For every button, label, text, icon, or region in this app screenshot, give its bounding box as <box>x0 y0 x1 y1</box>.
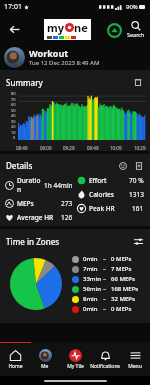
staticText: – <box>103 265 107 273</box>
button[interactable]: Calories <box>77 190 146 199</box>
button[interactable]: Workout <box>4 44 146 70</box>
staticText: Details <box>6 160 33 171</box>
staticText: 10 <box>11 130 16 135</box>
staticText: 10:29 <box>134 145 146 151</box>
staticText: 09:09 <box>40 145 52 151</box>
staticText: Tue 12 Dec 2023 8:49 AM <box>29 59 100 67</box>
button[interactable]: 8min <box>72 295 148 303</box>
staticText: 0min <box>83 305 103 313</box>
button[interactable]: 7min <box>72 265 148 273</box>
staticText: – <box>103 275 107 283</box>
staticText: Calories <box>89 190 129 199</box>
staticText: 0 MEPs <box>111 255 132 263</box>
staticText: Summary <box>6 77 43 88</box>
button[interactable]: Chart options <box>131 234 145 248</box>
button[interactable]: Home <box>0 343 30 376</box>
staticText: – <box>103 255 107 263</box>
button[interactable]: Delete workout <box>131 75 145 89</box>
staticText: Workout <box>29 47 69 59</box>
staticText: Effort <box>89 176 129 185</box>
staticText: 08:49 <box>16 145 28 151</box>
staticText: Me <box>41 363 49 370</box>
staticText: 0 MEPs <box>111 305 132 313</box>
button[interactable]: Profile status <box>105 21 123 39</box>
staticText: My Tile <box>67 363 84 370</box>
button[interactable]: Peak HR <box>77 204 146 213</box>
button[interactable]: Duration <box>5 176 75 194</box>
staticText: 09:29 <box>63 145 75 151</box>
button[interactable]: Mood <box>116 159 129 172</box>
staticText: 33min <box>83 275 103 283</box>
button[interactable]: Add note <box>132 159 145 172</box>
button[interactable]: 0min <box>72 255 148 263</box>
button[interactable]: Me <box>30 343 60 376</box>
staticText: 7 MEPs <box>111 265 132 273</box>
staticText: Notifications <box>90 363 120 370</box>
button[interactable]: Back <box>4 19 24 39</box>
staticText: – <box>103 285 107 293</box>
staticText: 20 <box>11 124 16 129</box>
staticText: 40 <box>11 113 16 118</box>
staticText: 1313 <box>129 190 144 199</box>
staticText: 126 <box>61 213 73 222</box>
staticText: Time in Zones <box>6 236 60 247</box>
staticText: 32 MEPs <box>111 295 135 303</box>
button[interactable]: My Tile <box>60 343 90 376</box>
button[interactable]: 0min <box>72 305 148 313</box>
button[interactable]: 56min <box>72 285 148 293</box>
staticText: 70 % <box>129 176 144 185</box>
staticText: 66 MEPs <box>111 275 135 283</box>
staticText: – <box>103 295 107 303</box>
staticText: 10:09 <box>110 145 122 151</box>
button[interactable]: Notifications <box>90 343 120 376</box>
button[interactable]: Search <box>125 19 147 40</box>
button[interactable]: Menu <box>120 343 150 376</box>
staticText: Menu <box>128 363 142 370</box>
staticText: 0 <box>13 135 16 140</box>
staticText: Peak HR <box>89 204 132 213</box>
staticText: 80 <box>11 91 16 96</box>
staticText: 90% <box>126 3 138 11</box>
staticText: Search <box>127 31 145 38</box>
staticText: ne <box>74 20 88 35</box>
staticText: 17:01 <box>4 2 22 12</box>
staticText: 50 <box>11 108 16 113</box>
staticText: 8min <box>83 295 103 303</box>
staticText: 70 <box>11 97 16 102</box>
button[interactable]: Average HR <box>5 213 75 222</box>
staticText: 30 <box>11 119 16 124</box>
staticText: 1h 44min <box>44 181 73 190</box>
staticText: MEPs <box>17 199 61 208</box>
staticText: 273 <box>61 199 73 208</box>
staticText: 60 <box>11 102 16 107</box>
staticText: my <box>47 20 65 35</box>
staticText: 56min <box>83 285 103 293</box>
staticText: Duration <box>17 176 44 194</box>
staticText: Average HR <box>17 213 61 222</box>
button[interactable]: 33min <box>72 275 148 283</box>
staticText: 161 <box>132 204 144 213</box>
staticText: – <box>103 305 107 313</box>
staticText: Home <box>8 363 23 370</box>
button[interactable]: MEPs <box>5 199 75 208</box>
staticText: 0min <box>83 255 103 263</box>
staticText: 168 MEPs <box>111 285 139 293</box>
staticText: 7min <box>83 265 103 273</box>
staticText: 09:49 <box>87 145 99 151</box>
button[interactable]: Effort <box>77 176 146 185</box>
